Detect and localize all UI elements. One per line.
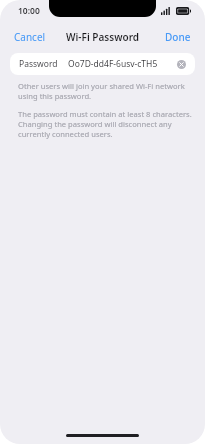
staticText: The password must contain at least 8 cha…	[18, 109, 193, 139]
staticText: 10:00	[18, 5, 40, 17]
button[interactable]: Done	[151, 27, 205, 47]
staticText: Wi-Fi Password	[66, 30, 140, 44]
button[interactable]: Cancel	[0, 27, 60, 47]
staticText: Cancel	[14, 30, 46, 44]
button[interactable]: Password	[10, 53, 195, 75]
staticText: Oo7D-dd4F-6usv-cTH5	[68, 58, 158, 70]
staticText: Other users will join your shared Wi-Fi …	[18, 81, 191, 101]
button[interactable]: Clear password	[174, 57, 188, 71]
staticText: Password	[19, 58, 58, 70]
staticText: Done	[165, 30, 191, 44]
